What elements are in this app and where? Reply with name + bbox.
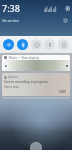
staticText: Screen recording in progress bbox=[4, 80, 48, 84]
button[interactable]: Play bbox=[65, 64, 69, 68]
staticText: Tap to stop bbox=[4, 85, 19, 89]
button[interactable]: Settings bbox=[61, 16, 70, 25]
staticText: Music • Now playing bbox=[9, 56, 39, 60]
staticText: STOP bbox=[59, 90, 67, 94]
button[interactable]: Flashlight bbox=[44, 39, 55, 50]
button[interactable]: Do not disturb bbox=[31, 39, 42, 50]
button[interactable]: Wi-Fi bbox=[3, 39, 14, 50]
staticText: No service bbox=[2, 18, 20, 23]
button[interactable]: Bluetooth bbox=[17, 39, 28, 50]
button[interactable]: Music • Now playing bbox=[2, 55, 70, 71]
staticText: 7:38 bbox=[2, 2, 20, 14]
button[interactable]: Auto rotate bbox=[58, 39, 69, 50]
staticText: System bbox=[8, 75, 18, 79]
button[interactable]: System bbox=[2, 73, 70, 96]
button[interactable]: App icon bbox=[3, 63, 8, 68]
button[interactable]: STOP bbox=[58, 90, 68, 94]
